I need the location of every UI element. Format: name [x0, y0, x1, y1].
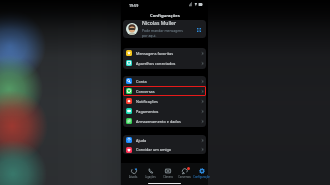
- staticText: Aparelhos conectados: [136, 61, 176, 66]
- button[interactable]: Atualiz.: [125, 168, 142, 179]
- button[interactable]: Código QR: [195, 26, 202, 33]
- staticText: Armazenamento e dados: [136, 119, 181, 124]
- staticText: Pode mandar mensagens por aqui.: [142, 28, 183, 38]
- button[interactable]: Aparelhos conectados: [123, 58, 206, 68]
- staticText: Notificações: [136, 99, 158, 104]
- button[interactable]: Conversas: [176, 168, 193, 179]
- button[interactable]: Armazenamento e dados: [123, 116, 206, 126]
- staticText: Câmera: [163, 175, 173, 179]
- staticText: Ajuda: [136, 138, 147, 143]
- staticText: Atualiz.: [129, 175, 138, 179]
- button[interactable]: Pagamentos: [123, 106, 206, 116]
- button[interactable]: Mensagens favoritas: [123, 48, 206, 58]
- button[interactable]: Conta: [123, 76, 206, 86]
- staticText: Configurações: [150, 13, 180, 19]
- staticText: Conversas: [136, 89, 155, 94]
- staticText: Convidar um amigo: [136, 147, 172, 152]
- staticText: Conta: [136, 79, 147, 84]
- button[interactable]: Convidar um amigo: [123, 145, 206, 154]
- staticText: Conversas: [178, 175, 191, 179]
- button[interactable]: Câmera: [159, 168, 176, 179]
- staticText: 19:59: [129, 3, 139, 8]
- button[interactable]: Ligações: [142, 168, 159, 179]
- staticText: Mensagens favoritas: [136, 51, 174, 56]
- button[interactable]: Notificações: [123, 96, 206, 106]
- button[interactable]: Ajuda: [123, 135, 206, 145]
- button[interactable]: Conversas: [123, 86, 206, 96]
- staticText: Ligações: [145, 175, 156, 179]
- staticText: Configurações: [193, 175, 210, 180]
- staticText: Nicolas Muller: [142, 20, 177, 27]
- staticText: Pagamentos: [136, 109, 159, 114]
- button[interactable]: Configurações: [193, 168, 210, 180]
- button[interactable]: Nicolas Muller: [123, 20, 206, 38]
